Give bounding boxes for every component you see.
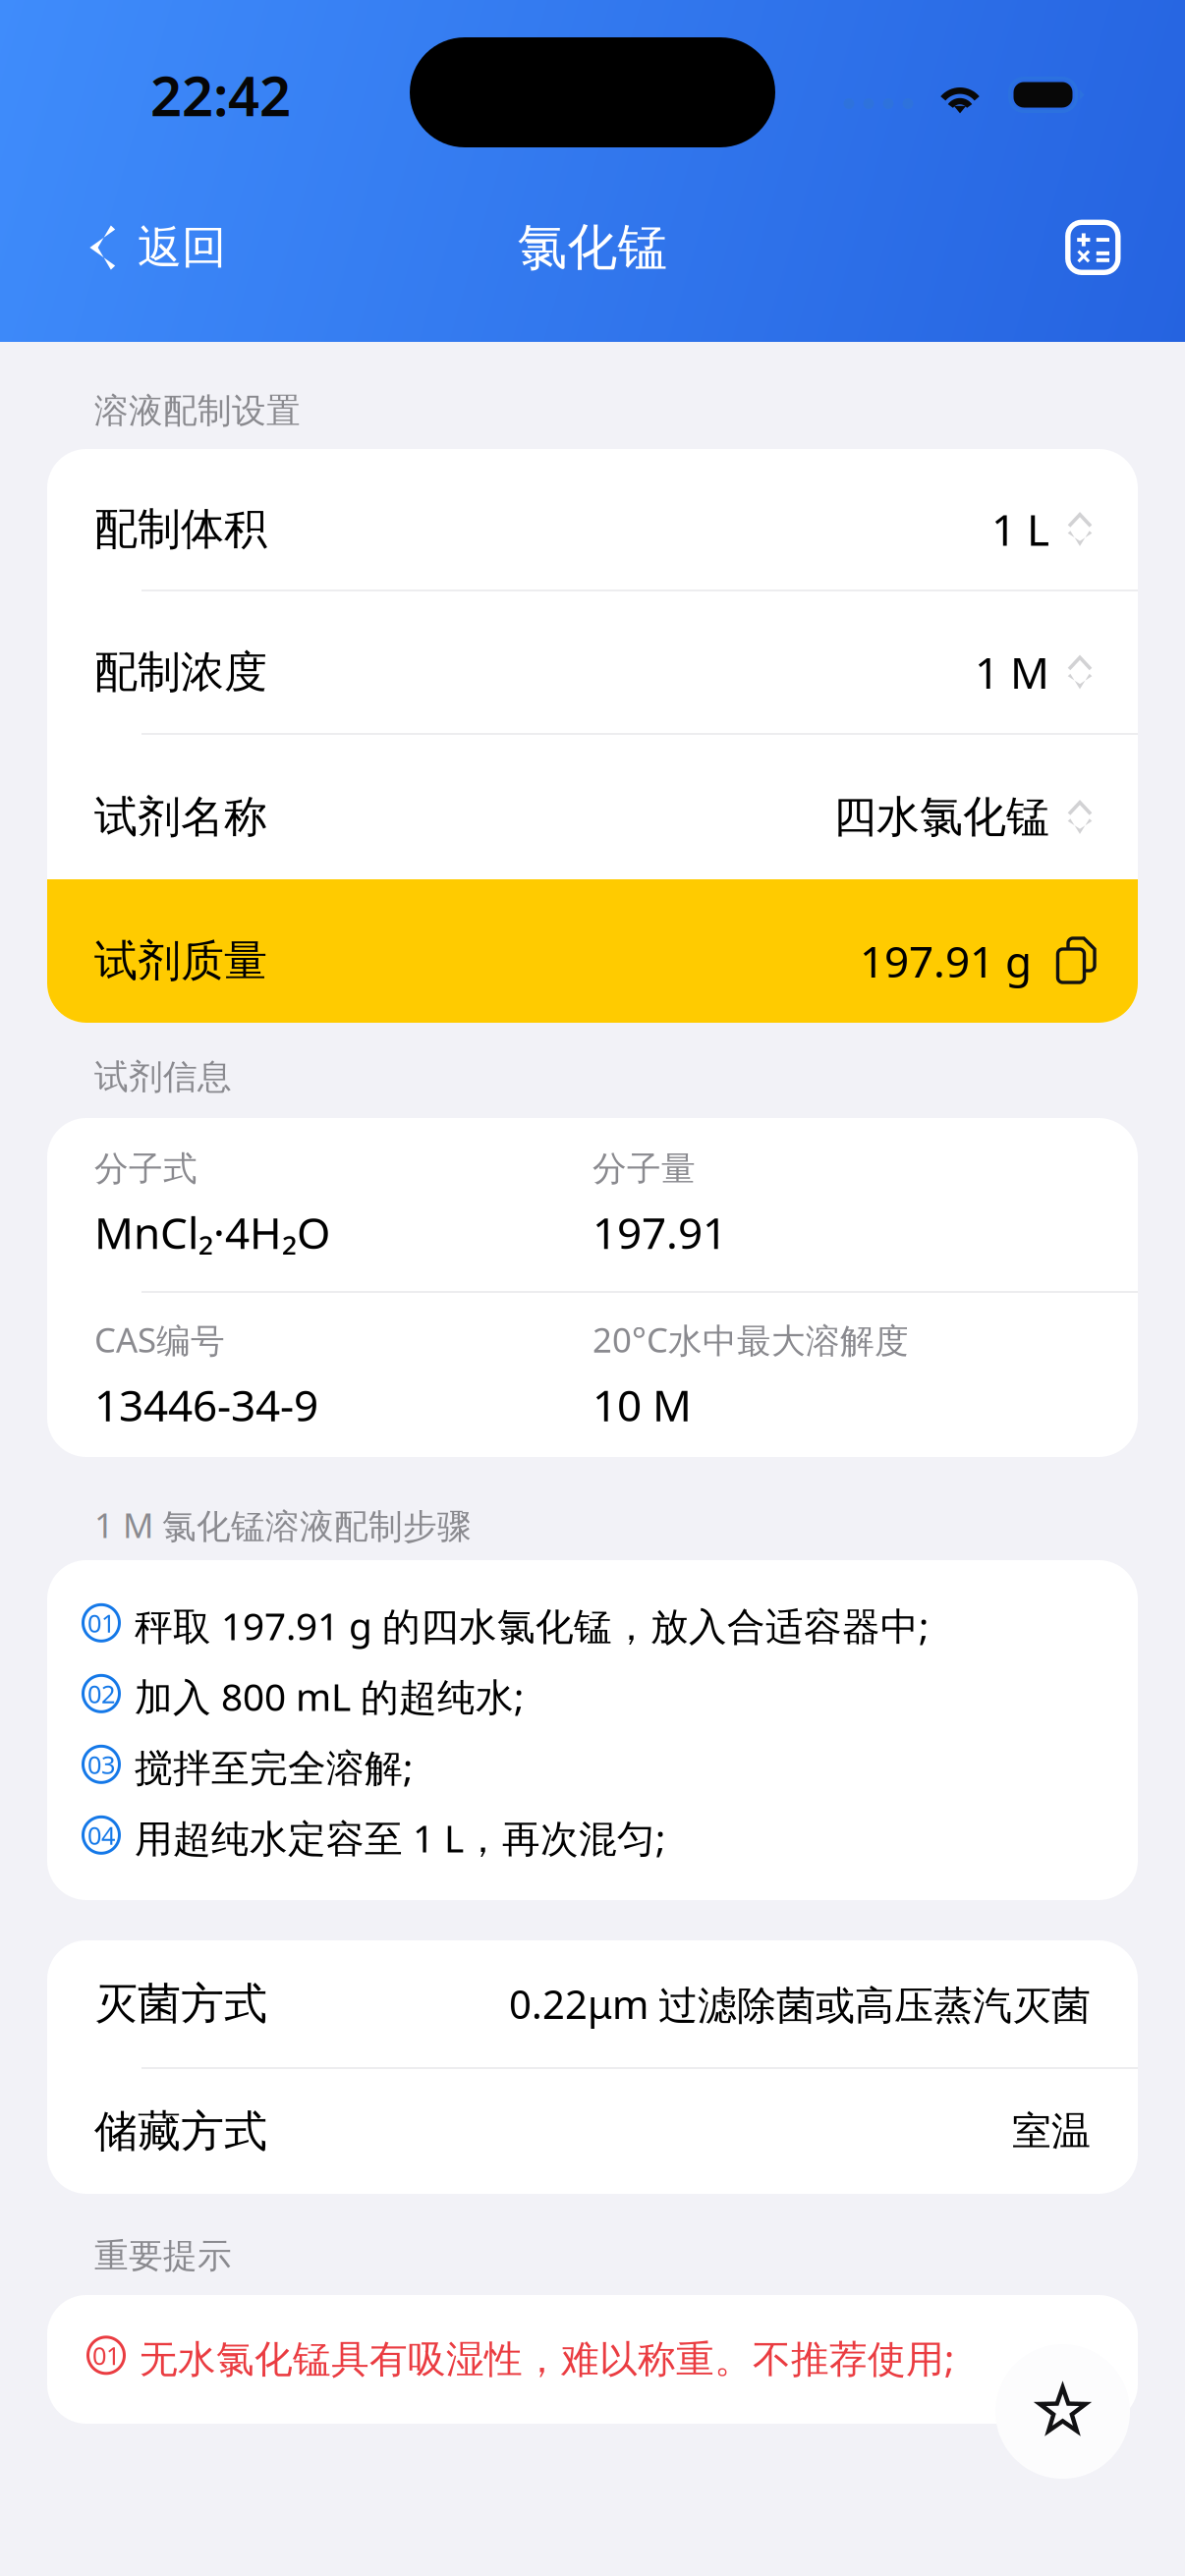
staticText: 氯化锰: [517, 217, 668, 278]
staticText: 197.91 g: [860, 932, 1032, 990]
button[interactable]: 配制体积: [47, 449, 1138, 589]
staticText: 储藏方式: [94, 2105, 267, 2158]
staticText: 22:42: [150, 58, 291, 131]
staticText: 无水氯化锰具有吸湿性，难以称重。不推荐使用;: [140, 2333, 954, 2383]
button[interactable]: 返回: [70, 198, 248, 297]
staticText: 03: [87, 1748, 115, 1781]
staticText: 用超纯水定容至 1 L，再次混匀;: [135, 1812, 665, 1863]
staticText: 10 M: [592, 1376, 692, 1433]
staticText: 01: [92, 2339, 120, 2372]
staticText: 返回: [138, 220, 226, 275]
button[interactable]: 试剂质量: [47, 879, 1138, 1023]
button[interactable]: Calculator: [1049, 198, 1137, 297]
staticText: 01: [87, 1606, 115, 1639]
staticText: 13446-34-9: [94, 1376, 318, 1433]
staticText: MnCl₂·4H₂O: [94, 1204, 330, 1261]
staticText: 试剂名称: [94, 790, 267, 843]
staticText: 分子式: [94, 1148, 197, 1190]
staticText: 配制体积: [94, 503, 267, 556]
button[interactable]: 试剂名称: [47, 735, 1138, 879]
staticText: 室温: [1012, 2107, 1091, 2156]
staticText: 04: [87, 1819, 115, 1852]
staticText: 秤取 197.91 g 的四水氯化锰，放入合适容器中;: [135, 1600, 929, 1651]
staticText: 0.22μm 过滤除菌或高压蒸汽灭菌: [509, 1977, 1091, 2030]
button[interactable]: 配制浓度: [47, 591, 1138, 733]
staticText: 灭菌方式: [94, 1977, 267, 2030]
staticText: 02: [87, 1677, 115, 1710]
staticText: 20°C水中最大溶解度: [592, 1317, 909, 1362]
staticText: CAS编号: [94, 1317, 225, 1362]
staticText: 1 M 氯化锰溶液配制步骤: [94, 1502, 472, 1548]
staticText: 试剂质量: [94, 934, 267, 987]
button[interactable]: Add to favourites: [995, 2344, 1130, 2479]
staticText: 溶液配制设置: [94, 390, 301, 432]
staticText: 试剂信息: [94, 1056, 232, 1098]
staticText: 加入 800 mL 的超纯水;: [135, 1671, 524, 1721]
staticText: 分子量: [592, 1148, 696, 1190]
staticText: 搅拌至完全溶解;: [135, 1742, 413, 1792]
staticText: 四水氯化锰: [833, 790, 1049, 843]
staticText: 1 L: [991, 500, 1049, 558]
staticText: 197.91: [592, 1204, 727, 1261]
staticText: 1 M: [975, 643, 1049, 701]
staticText: 配制浓度: [94, 645, 267, 699]
staticText: 重要提示: [94, 2235, 232, 2277]
